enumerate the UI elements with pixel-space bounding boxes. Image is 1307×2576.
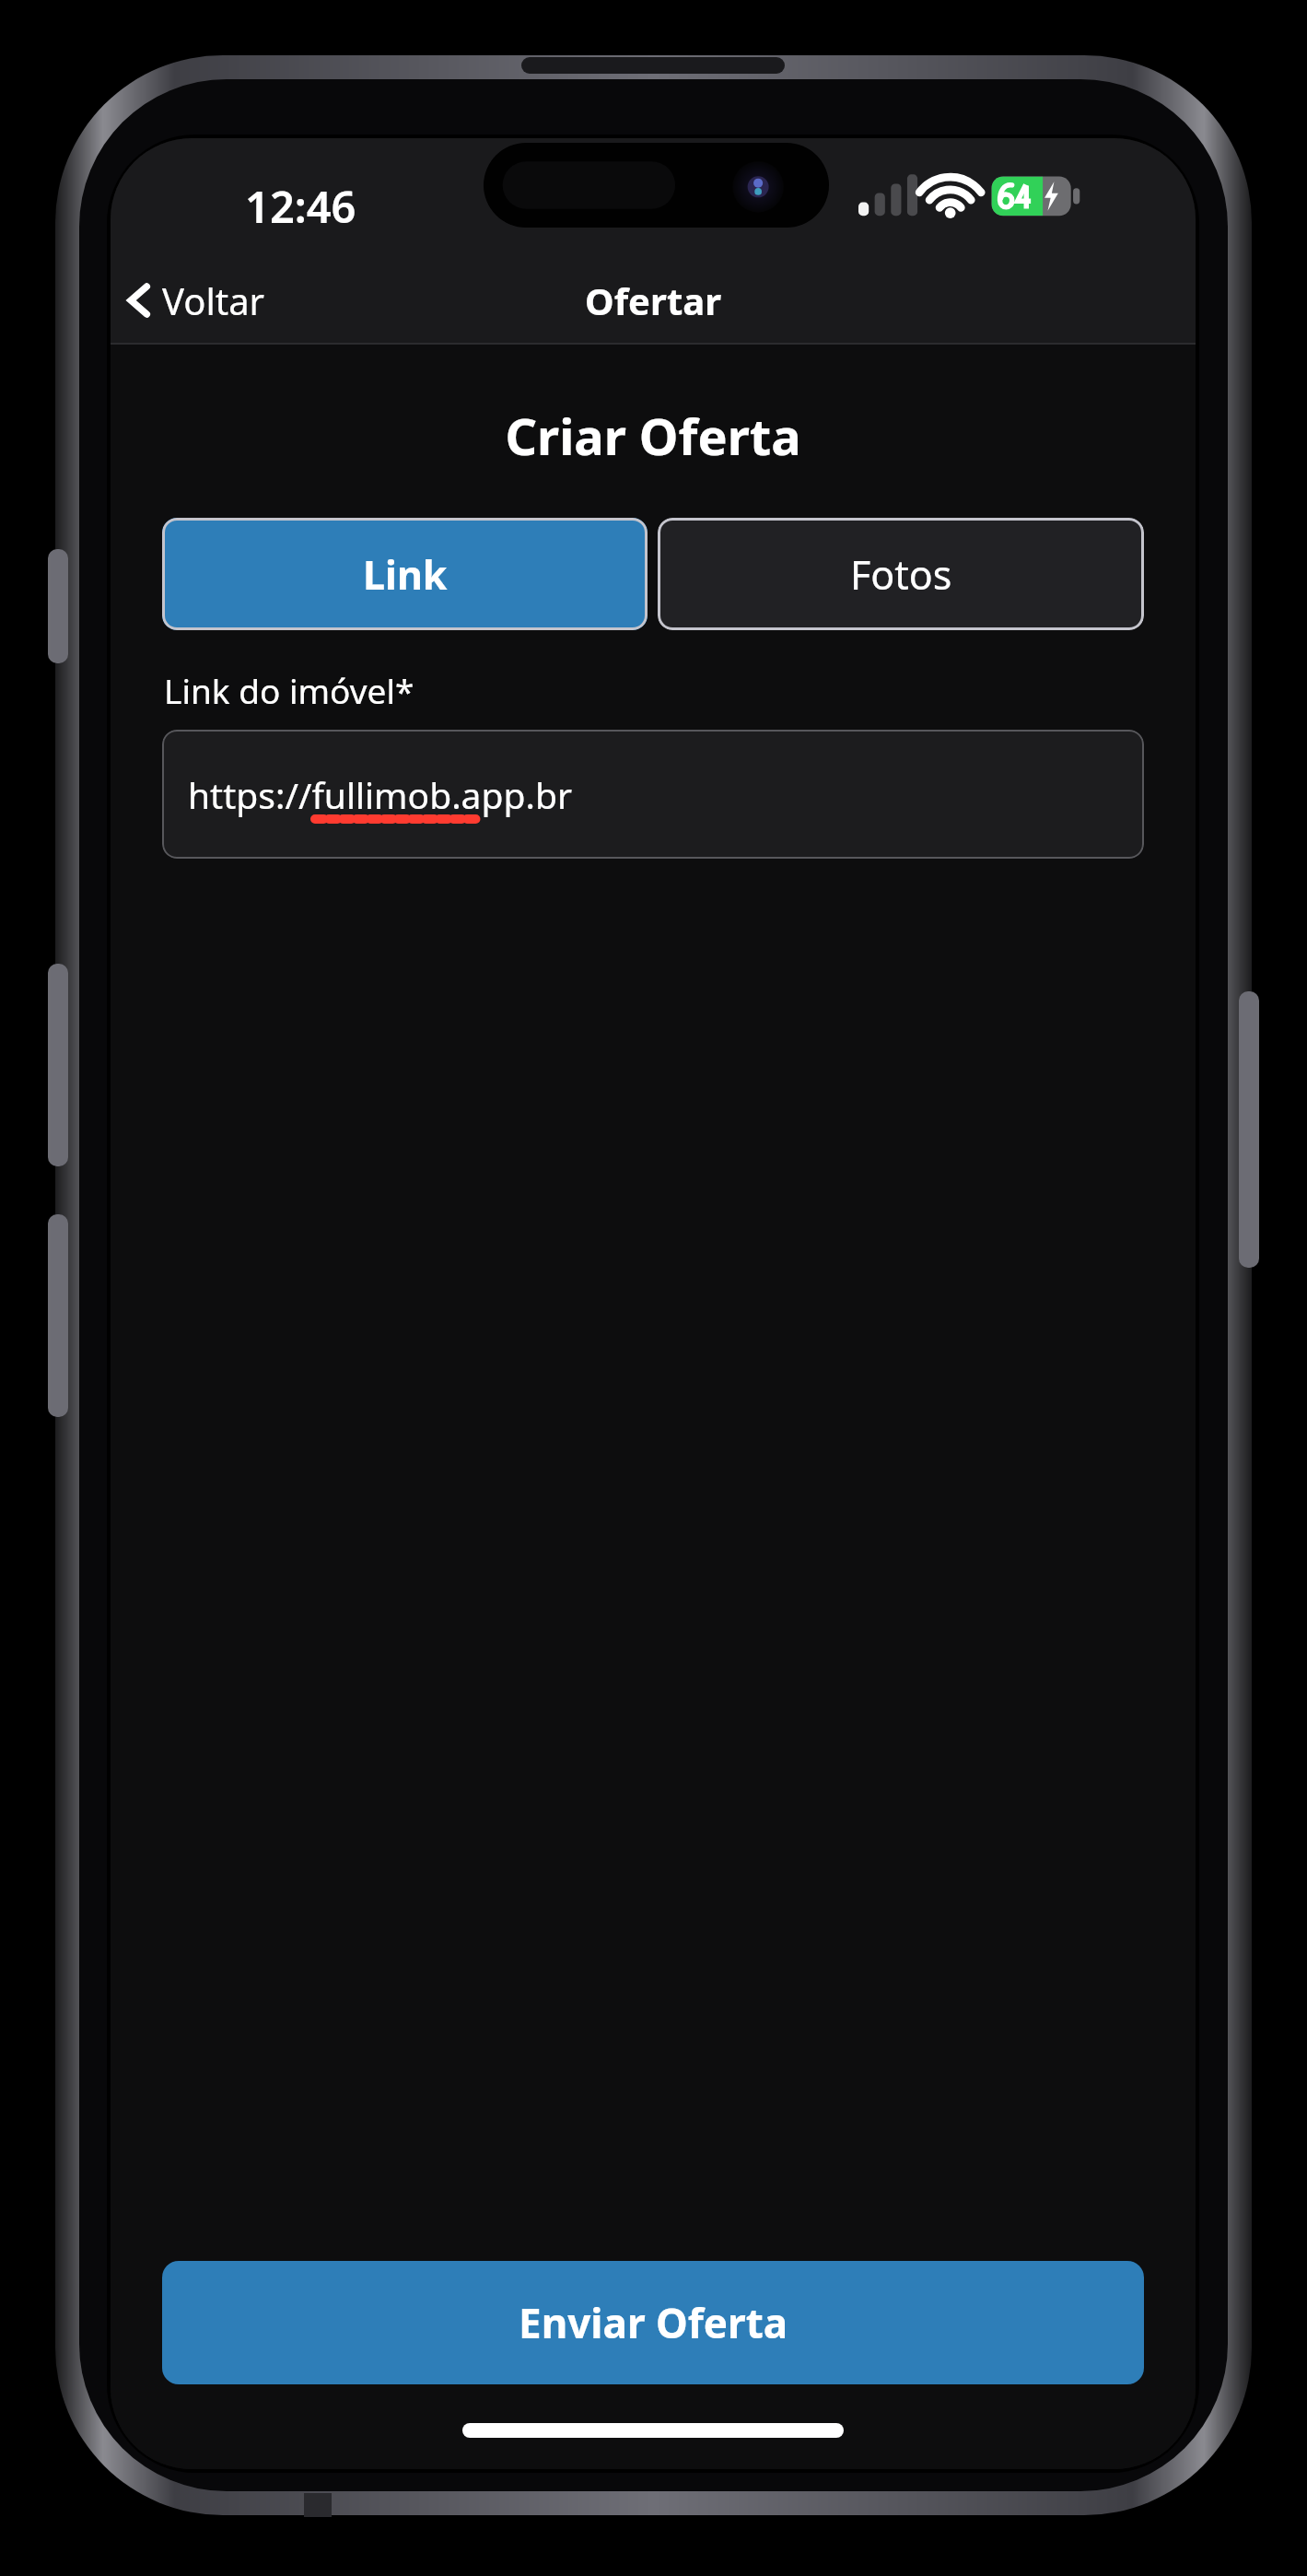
staticText: Enviar Oferta — [519, 2295, 788, 2350]
staticText: Fotos — [850, 547, 952, 602]
staticText: Link do imóvel* — [164, 667, 414, 713]
button[interactable]: Link — [162, 518, 648, 630]
staticText: 12:46 — [245, 177, 356, 236]
staticText: Link — [363, 547, 448, 602]
staticText: Criar Oferta — [111, 402, 1196, 470]
staticText: Ofertar — [585, 275, 722, 325]
staticText: https://fullimob.app.br — [188, 770, 572, 819]
button[interactable]: Fotos — [658, 518, 1144, 630]
button[interactable]: Enviar Oferta — [162, 2261, 1144, 2384]
staticText: Voltar — [162, 275, 265, 325]
button[interactable]: https://fullimob.app.br — [162, 730, 1144, 859]
button[interactable]: Voltar — [111, 268, 278, 333]
